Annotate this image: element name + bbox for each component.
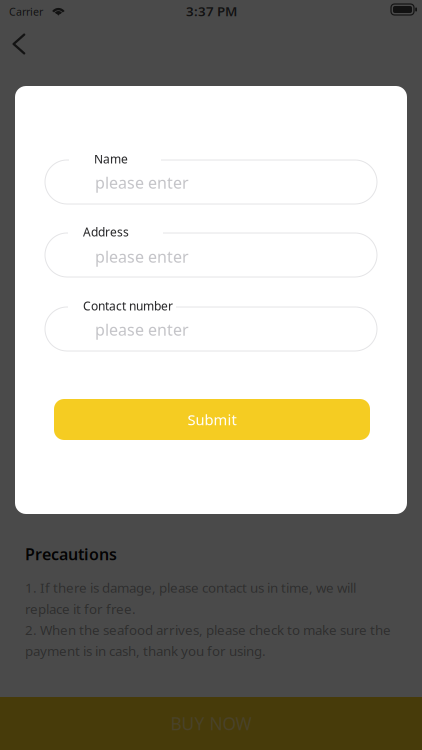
staticText: BUY NOW	[170, 712, 251, 735]
staticText: please enter	[95, 246, 189, 267]
staticText: Name	[94, 151, 128, 167]
staticText: 3:37 PM	[186, 2, 237, 20]
staticText: Submit	[187, 410, 236, 429]
staticText: please enter	[95, 319, 189, 340]
staticText: 1. If there is damage, please contact us…	[25, 579, 356, 617]
staticText: Carrier	[9, 4, 43, 19]
staticText: please enter	[95, 172, 189, 193]
button[interactable]: Back	[1, 23, 47, 67]
staticText: Precautions	[25, 543, 117, 565]
staticText: Address	[83, 224, 129, 240]
button[interactable]: BUY NOW	[0, 697, 422, 750]
staticText: 2. When the seafood arrives, please chec…	[25, 621, 391, 660]
staticText: Contact number	[83, 298, 173, 314]
button[interactable]: Submit	[54, 399, 370, 440]
